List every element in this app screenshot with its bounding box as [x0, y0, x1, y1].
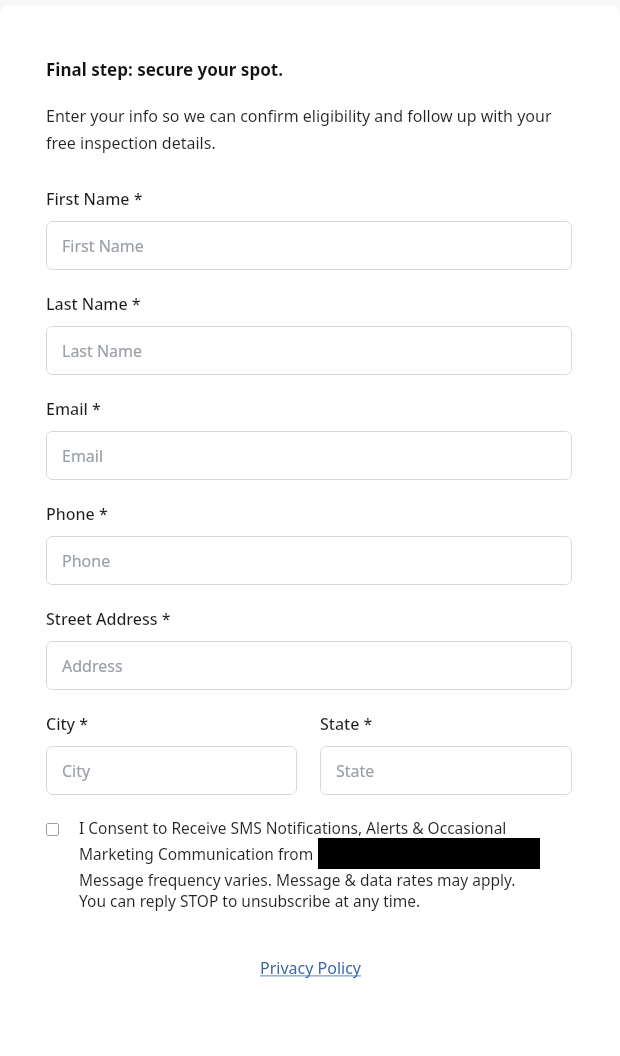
button[interactable]: State — [320, 746, 572, 795]
button[interactable]: Consent to SMS notifications — [46, 817, 572, 911]
staticText: Enter your info so we can confirm eligib… — [46, 105, 576, 154]
staticText: State * — [320, 713, 373, 735]
staticText: Final step: secure your spot. — [46, 58, 283, 81]
button[interactable]: First Name — [46, 221, 572, 270]
staticText: I Consent to Receive SMS Notifications, … — [79, 817, 507, 838]
button[interactable]: Last Name — [46, 326, 572, 375]
staticText: Last Name * — [46, 293, 141, 315]
staticText: First Name * — [46, 188, 143, 210]
staticText: State — [336, 760, 375, 782]
button[interactable]: Address — [46, 641, 572, 690]
staticText: First Name — [62, 235, 144, 257]
staticText: Marketing Communication from — [79, 843, 318, 864]
staticText: Phone * — [46, 503, 108, 525]
staticText: Address — [62, 655, 123, 677]
button[interactable]: Privacy Policy — [260, 957, 361, 979]
staticText: Street Address * — [46, 608, 171, 630]
button[interactable]: Phone — [46, 536, 572, 585]
staticText: City — [62, 760, 91, 782]
staticText: Message frequency varies. Message & data… — [79, 869, 516, 890]
staticText: Last Name — [62, 340, 143, 362]
button[interactable]: City — [46, 746, 297, 795]
staticText: City * — [46, 713, 88, 735]
staticText: Privacy Policy — [260, 957, 361, 979]
other: Consent to SMS notifications — [46, 823, 59, 836]
button[interactable]: Email — [46, 431, 572, 480]
staticText: Email * — [46, 398, 101, 420]
staticText: Email — [62, 445, 104, 467]
staticText: You can reply STOP to unsubscribe at any… — [79, 890, 421, 911]
staticText: Phone — [62, 550, 111, 572]
